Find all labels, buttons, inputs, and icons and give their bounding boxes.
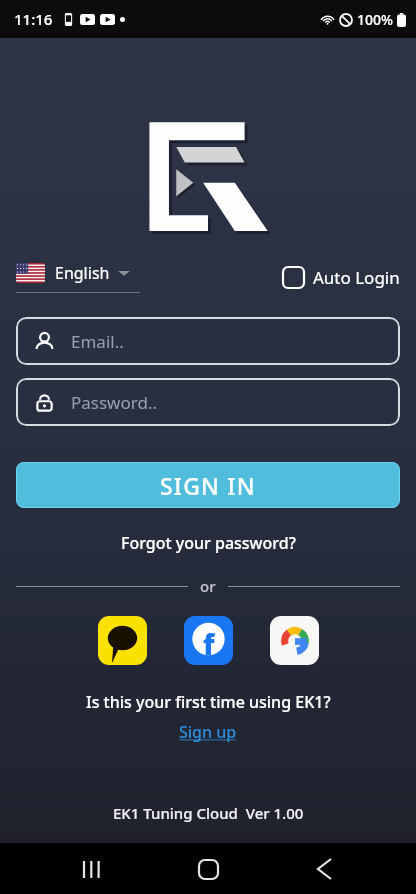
- button[interactable]: Back: [300, 845, 348, 893]
- staticText: Password..: [71, 391, 158, 414]
- button[interactable]: Password..: [16, 378, 400, 426]
- staticText: Is this your first time using EK1?: [86, 691, 331, 713]
- staticText: English: [55, 262, 110, 284]
- staticText: or: [200, 576, 216, 596]
- staticText: 11:16: [14, 9, 53, 29]
- button[interactable]: Sign in with Facebook: [184, 616, 233, 665]
- staticText: Sign up: [179, 721, 237, 743]
- button[interactable]: Sign in with Kakao: [98, 616, 147, 665]
- staticText: Forgot your password?: [121, 532, 296, 554]
- other: EK1 logo: [147, 120, 269, 232]
- button[interactable]: Home: [184, 845, 232, 893]
- button[interactable]: Forgot your password?: [0, 532, 416, 554]
- staticText: f: [203, 625, 215, 663]
- button[interactable]: SIGN IN: [16, 462, 400, 508]
- button[interactable]: Auto Login: [283, 266, 400, 289]
- button[interactable]: English: [16, 262, 140, 293]
- staticText: SIGN IN: [160, 470, 256, 501]
- button[interactable]: Sign up: [179, 721, 237, 743]
- staticText: Auto Login: [313, 266, 400, 289]
- staticText: EK1 Tuning Cloud Ver 1.00: [113, 803, 304, 823]
- button[interactable]: Email..: [16, 317, 400, 365]
- staticText: Email..: [71, 330, 124, 353]
- staticText: 100%: [357, 10, 393, 29]
- button[interactable]: Recent apps: [68, 845, 116, 893]
- button[interactable]: Sign in with Google: [270, 616, 319, 665]
